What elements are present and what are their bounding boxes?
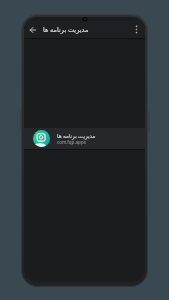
button[interactable] [129,21,143,38]
button[interactable] [24,21,41,38]
staticText: مدیریت برنامه ها [57,132,96,139]
button[interactable]: مدیریت برنامه ها [24,128,145,149]
staticText: مدیریت برنامه ها [43,25,89,34]
staticText: com.fqp.apps [57,139,86,145]
